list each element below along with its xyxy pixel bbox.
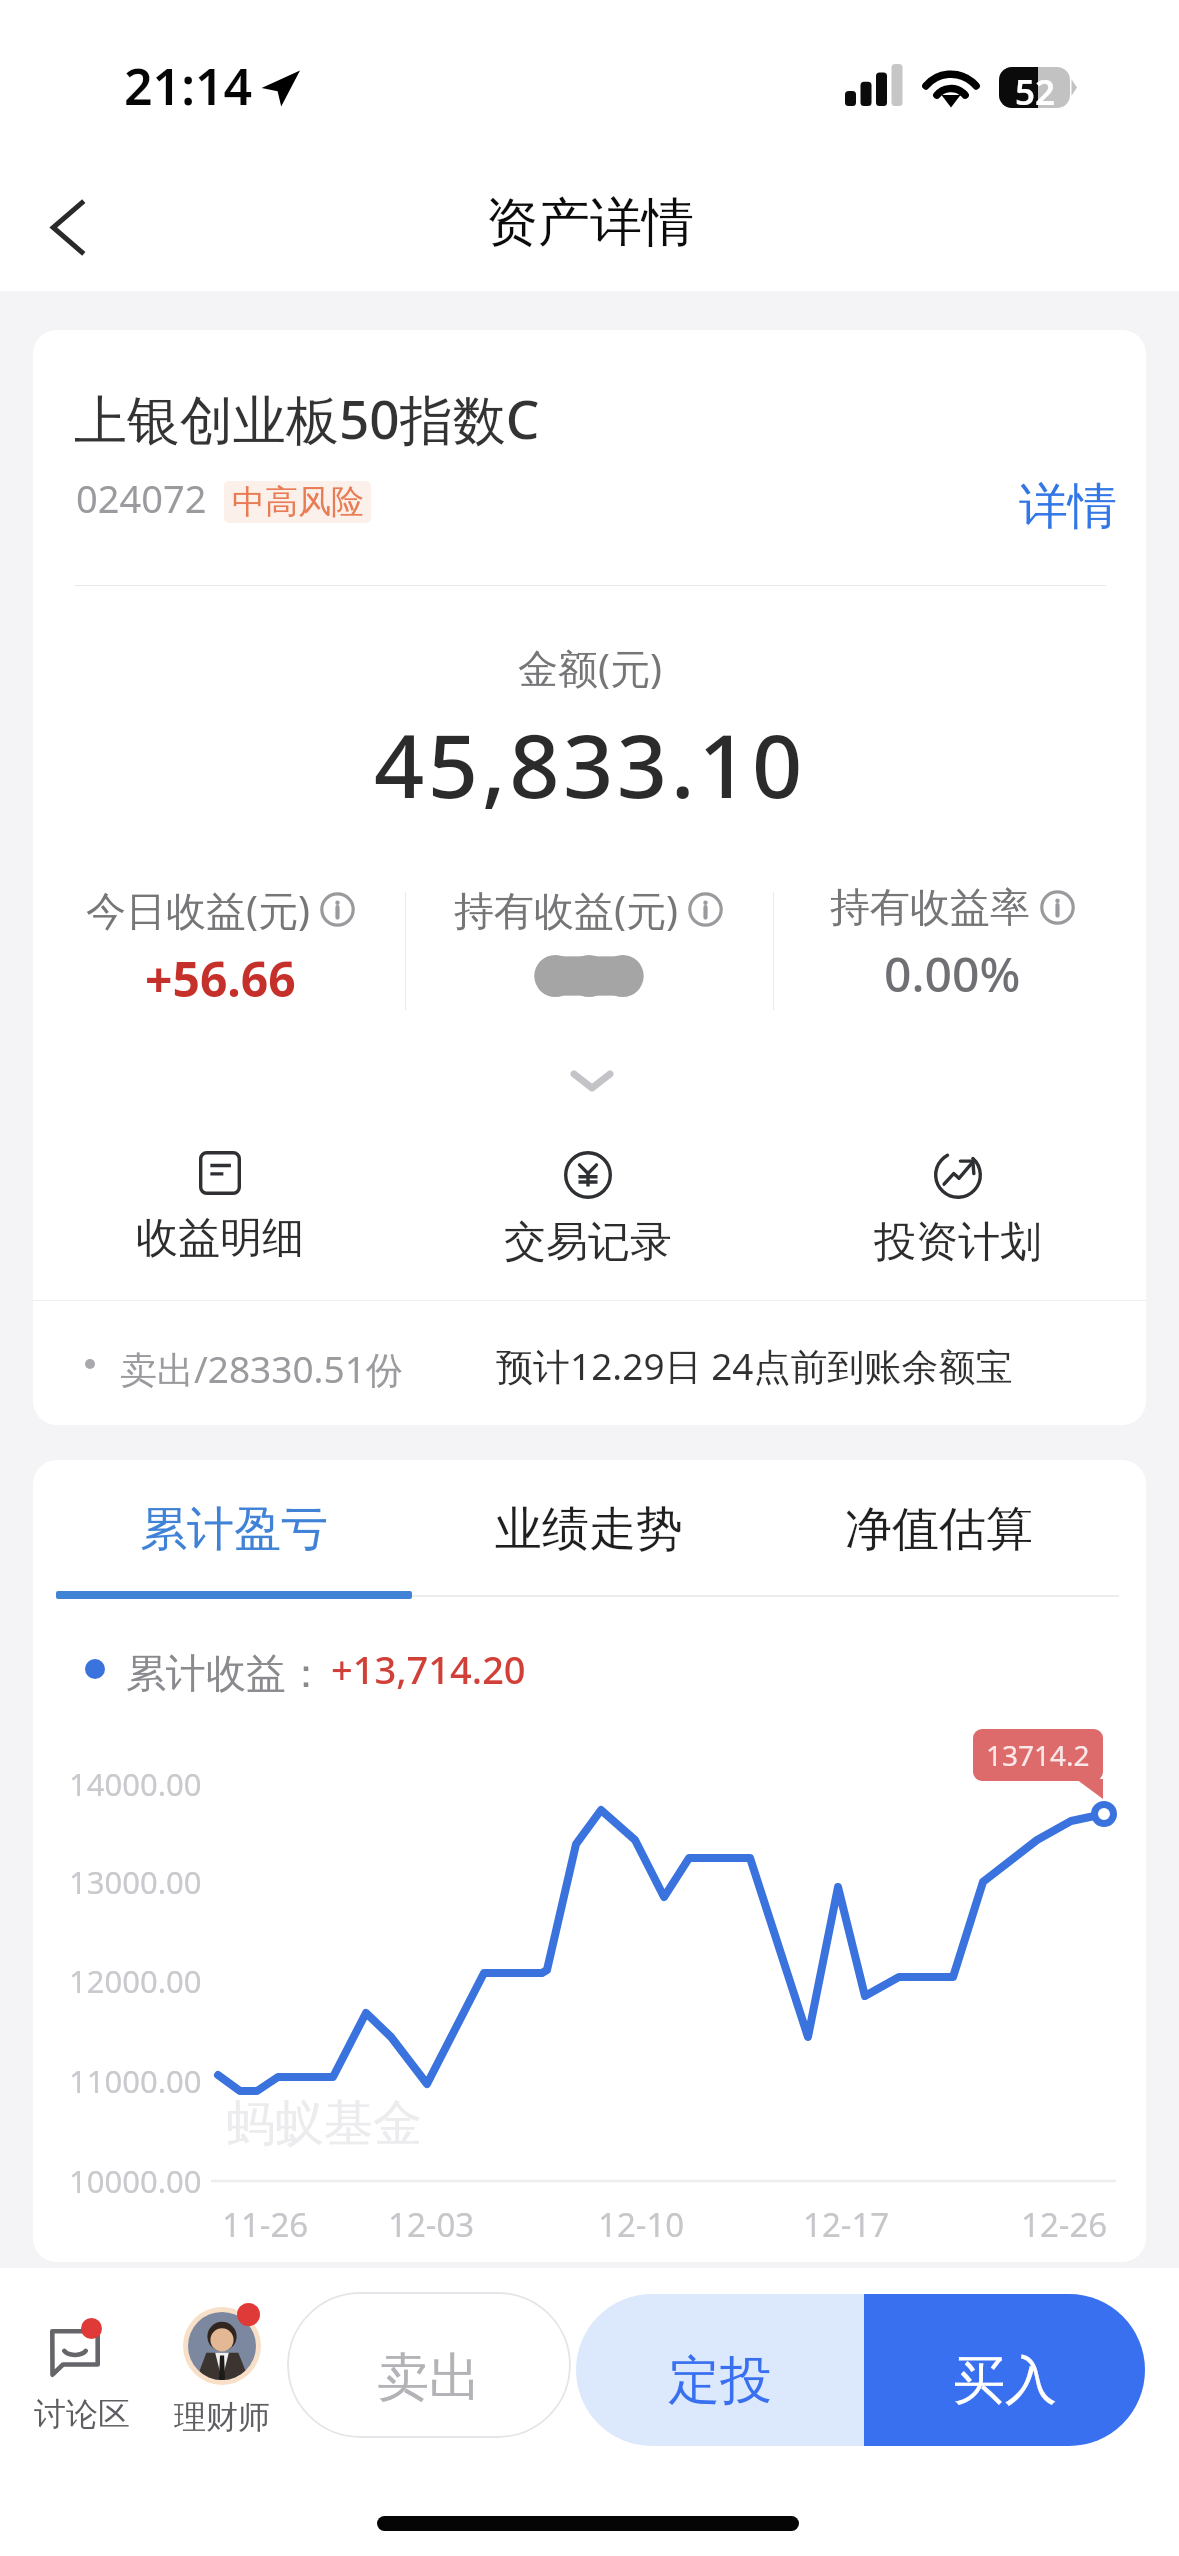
button[interactable]: Back — [23, 182, 113, 272]
button[interactable]: Discussion area — [26, 2318, 138, 2434]
staticText: 13000.00 — [69, 1861, 202, 1903]
staticText: 中高风险 — [232, 481, 364, 523]
staticText: 详情 — [1019, 476, 1117, 538]
button[interactable]: 投资计划 — [778, 1130, 1138, 1275]
staticText: 0.00% — [884, 941, 1021, 1006]
staticText: 讨论区 — [34, 2394, 130, 2434]
button[interactable]: 交易记录 — [408, 1130, 768, 1275]
staticText: 净值估算 — [845, 1500, 1033, 1559]
button[interactable]: 详情 — [988, 462, 1146, 552]
staticText: 024072 — [76, 472, 207, 524]
button[interactable]: Expand details — [542, 1042, 642, 1120]
staticText: 13714.2 — [986, 1736, 1090, 1774]
staticText: 10000.00 — [69, 2160, 202, 2202]
staticText: 投资计划 — [874, 1216, 1042, 1269]
staticText: 11000.00 — [69, 2060, 202, 2102]
button[interactable]: 业绩走势 — [419, 1470, 759, 1588]
button[interactable]: 累计盈亏 — [64, 1470, 404, 1588]
staticText: 收益明细 — [136, 1212, 304, 1265]
staticText: 52 — [1015, 68, 1056, 109]
staticText: 业绩走势 — [495, 1500, 683, 1559]
staticText: 上银创业板50指数C — [74, 382, 540, 454]
staticText: 持有收益率 — [830, 882, 1030, 932]
staticText: 预计12.29日 24点前到账余额宝 — [496, 1340, 1013, 1391]
staticText: 14000.00 — [69, 1763, 202, 1805]
staticText: 45,833.10 — [374, 704, 806, 824]
staticText: +13,714.20 — [331, 1643, 526, 1695]
staticText: 卖出/28330.51份 — [120, 1343, 403, 1394]
staticText: 12-26 — [1021, 2202, 1108, 2247]
staticText: 12000.00 — [69, 1960, 202, 2002]
staticText: 蚂蚁基金 — [226, 2093, 422, 2155]
staticText: 12-10 — [598, 2202, 685, 2247]
button[interactable]: 持有收益率 — [772, 882, 1132, 1022]
staticText: +56.66 — [145, 946, 296, 1011]
staticText: 今日收益(元) — [86, 882, 310, 937]
staticText: 累计盈亏 — [140, 1500, 328, 1559]
staticText: 累计收益： — [126, 1648, 326, 1698]
staticText: 定投 — [668, 2348, 772, 2414]
staticText: 12-03 — [388, 2202, 475, 2247]
staticText: 11-26 — [222, 2202, 309, 2247]
staticText: 卖出 — [377, 2345, 481, 2411]
staticText: 理财师 — [174, 2397, 270, 2437]
button[interactable]: 收益明细 — [40, 1130, 400, 1275]
staticText: 12-17 — [803, 2202, 890, 2247]
staticText: 交易记录 — [504, 1216, 672, 1269]
button[interactable]: 卖出 — [287, 2292, 571, 2438]
button[interactable]: 今日收益(元) — [40, 882, 400, 1022]
staticText: 21:14 — [124, 52, 253, 120]
button[interactable]: 买入 — [864, 2294, 1145, 2446]
staticText: 买入 — [953, 2348, 1057, 2414]
button[interactable]: 净值估算 — [769, 1470, 1109, 1588]
button[interactable]: Financial advisor — [166, 2303, 278, 2437]
staticText: 金额(元) — [518, 640, 662, 695]
button[interactable]: 定投 — [576, 2294, 864, 2446]
staticText: 持有收益(元) — [454, 882, 678, 937]
staticText: 资产详情 — [486, 190, 694, 256]
